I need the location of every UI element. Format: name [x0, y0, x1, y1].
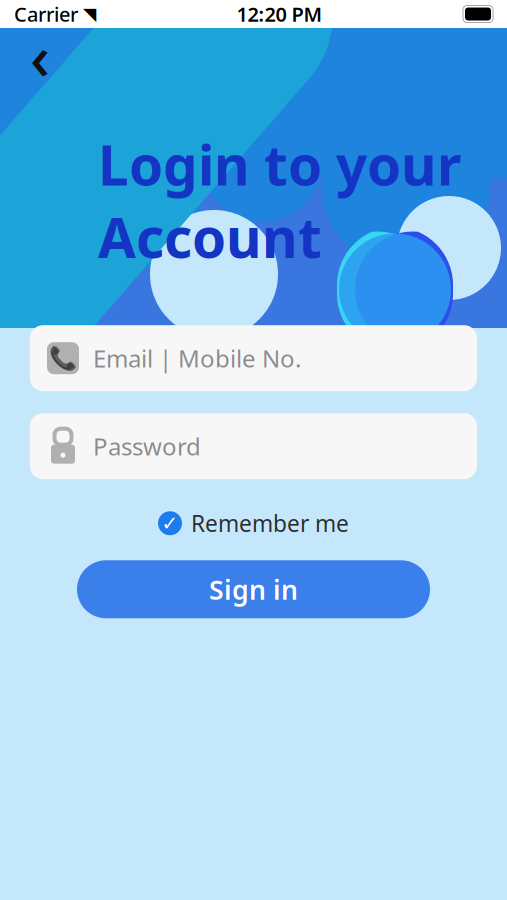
button[interactable]: Sign in — [77, 560, 430, 618]
button[interactable]: Back — [14, 30, 66, 82]
staticText: Email | Mobile No. — [93, 342, 301, 374]
staticText: ◥ — [83, 4, 96, 24]
staticText: Login to your Account — [98, 128, 461, 273]
staticText: Password — [93, 430, 201, 462]
staticText: Remember me — [191, 508, 349, 538]
staticText: ‹ — [30, 15, 50, 97]
staticText: 📞 — [49, 345, 77, 371]
button[interactable]: ✓ — [158, 504, 349, 542]
staticText: Carrier — [14, 1, 78, 27]
button[interactable]: Password — [30, 413, 477, 479]
staticText: 12:20 PM — [236, 1, 322, 27]
button[interactable]: 📞 — [30, 325, 477, 391]
staticText: Sign in — [209, 572, 298, 607]
staticText: ✓ — [161, 512, 178, 535]
